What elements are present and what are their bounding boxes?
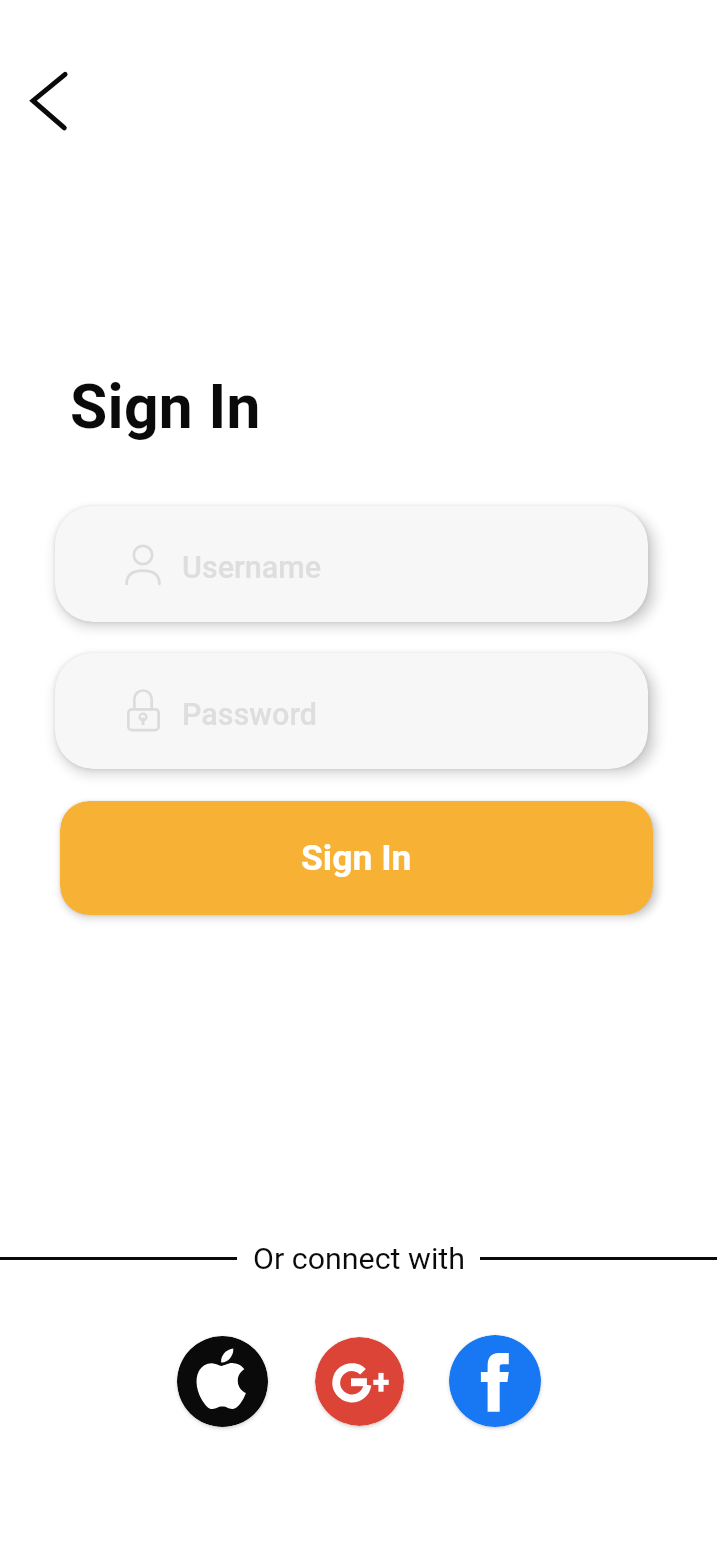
button[interactable]: Sign in with Google: [315, 1337, 404, 1426]
button[interactable]: Back: [14, 64, 86, 138]
button[interactable]: Username: [55, 506, 648, 622]
button[interactable]: Sign in with Facebook: [449, 1335, 541, 1427]
staticText: Sign In: [301, 837, 412, 879]
staticText: Username: [182, 550, 322, 586]
button[interactable]: Sign In: [60, 801, 653, 915]
staticText: Sign In: [70, 372, 261, 443]
staticText: Or connect with: [253, 1241, 465, 1277]
staticText: Password: [182, 697, 318, 733]
button[interactable]: Password: [55, 653, 648, 769]
button[interactable]: Sign in with Apple: [177, 1336, 268, 1427]
